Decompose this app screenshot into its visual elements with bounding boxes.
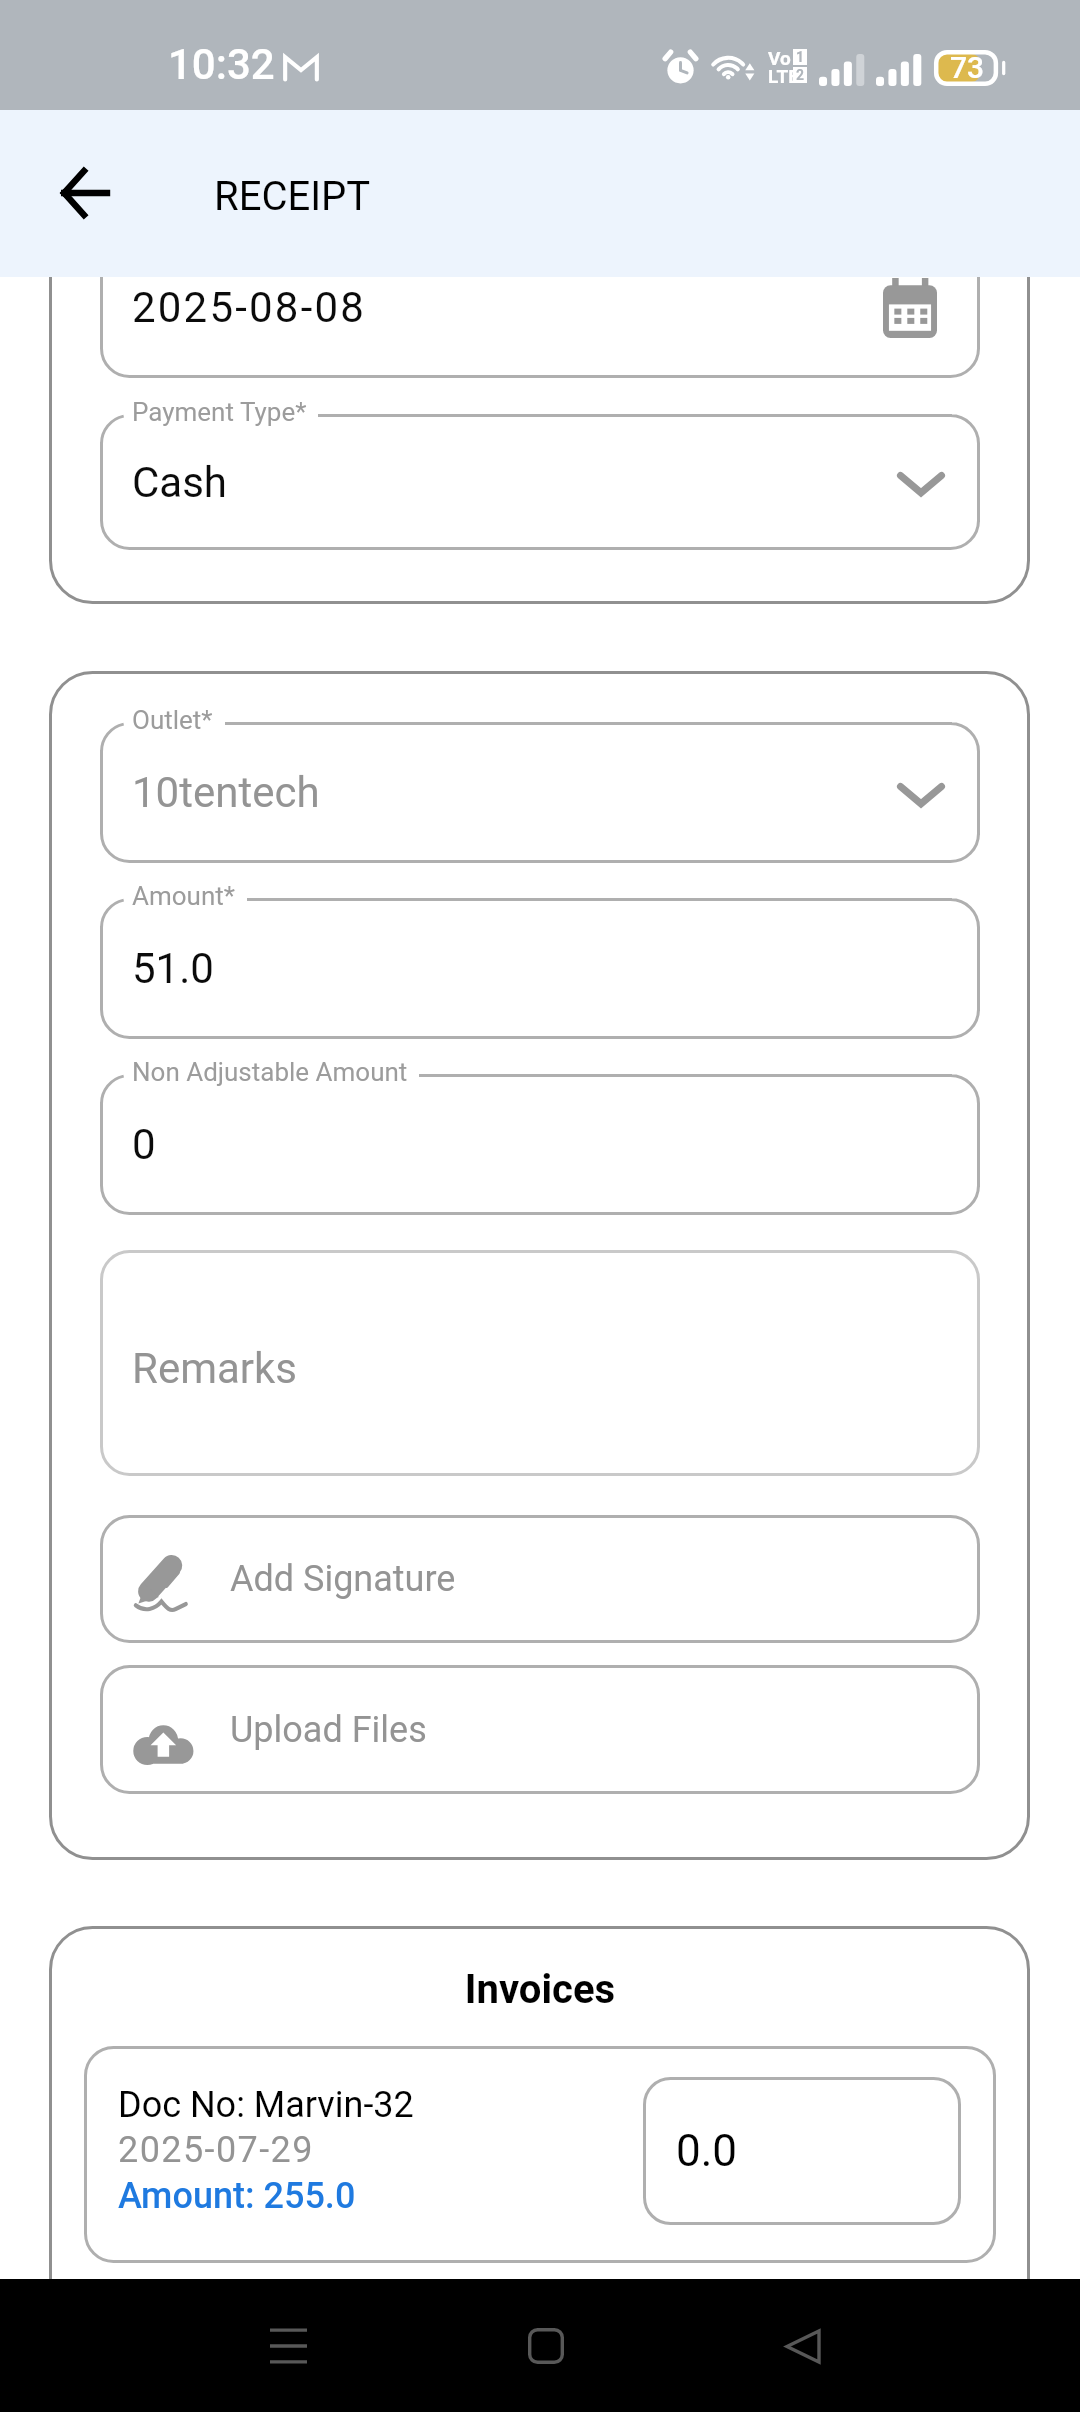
button[interactable]: Open dropdown bbox=[884, 445, 958, 519]
button[interactable]: Add Signature bbox=[100, 1515, 980, 1643]
staticText: Outlet* bbox=[132, 705, 213, 735]
staticText: 2025-08-08 bbox=[132, 283, 367, 332]
button[interactable]: Pick date bbox=[863, 277, 957, 359]
staticText: Cash bbox=[132, 458, 227, 507]
staticText: Non Adjustable Amount bbox=[132, 1057, 408, 1087]
staticText: 10:32 bbox=[168, 40, 275, 89]
staticText: 2025-07-29 bbox=[118, 2129, 314, 2171]
staticText: Remarks bbox=[132, 1344, 298, 1393]
button[interactable]: Open dropdown bbox=[884, 756, 958, 830]
button[interactable]: Payment Type* bbox=[100, 414, 980, 550]
button[interactable]: Back bbox=[753, 2296, 853, 2396]
button[interactable]: Remarks bbox=[100, 1250, 980, 1476]
button[interactable]: 2025-08-08 bbox=[100, 277, 980, 378]
button[interactable]: Non Adjustable Amount bbox=[100, 1074, 980, 1215]
staticText: 51.0 bbox=[132, 944, 214, 993]
button[interactable]: Amount* bbox=[100, 898, 980, 1039]
staticText: Upload Files bbox=[230, 1709, 427, 1751]
button[interactable]: Recent apps bbox=[238, 2296, 338, 2396]
staticText: 0.0 bbox=[676, 2125, 738, 2177]
staticText: 1 bbox=[796, 49, 805, 65]
button[interactable]: Outlet* bbox=[100, 722, 980, 863]
staticText: 10tentech bbox=[132, 768, 320, 817]
staticText: RECEIPT bbox=[214, 173, 371, 220]
staticText: Add Signature bbox=[230, 1558, 456, 1600]
staticText: Payment Type* bbox=[132, 397, 307, 427]
staticText: 2 bbox=[796, 67, 805, 83]
staticText: 0 bbox=[132, 1120, 156, 1169]
staticText: Amount* bbox=[132, 881, 235, 911]
button[interactable]: Home bbox=[496, 2296, 596, 2396]
staticText: Vo bbox=[768, 47, 791, 69]
staticText: Amount: 255.0 bbox=[118, 2175, 356, 2217]
staticText: LTE bbox=[768, 65, 799, 87]
staticText: 73 bbox=[950, 50, 985, 85]
staticText: Doc No: Marvin-32 bbox=[118, 2084, 414, 2126]
button[interactable]: Back bbox=[34, 143, 134, 243]
button[interactable]: Doc No: Marvin-32 bbox=[84, 2046, 996, 2263]
staticText: Invoices bbox=[0, 1966, 1080, 2013]
button[interactable]: Upload Files bbox=[100, 1665, 980, 1794]
